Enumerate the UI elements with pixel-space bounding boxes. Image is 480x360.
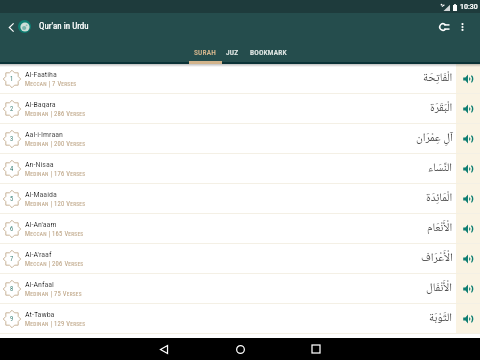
staticText: SURAH — [194, 48, 217, 57]
staticText: BOOKMARK — [250, 48, 287, 57]
button[interactable]: More options — [451, 16, 473, 38]
staticText: 2 — [10, 105, 14, 113]
staticText: 7 — [10, 255, 14, 263]
button[interactable]: JUZ — [226, 40, 239, 64]
button[interactable]: 2 — [0, 94, 480, 123]
staticText: 5 — [10, 195, 14, 203]
button[interactable]: Play audio — [456, 124, 480, 153]
staticText: الْأَنْعَام — [427, 219, 453, 239]
button[interactable]: 4 — [0, 154, 480, 183]
staticText: الْمَائِدَة — [426, 189, 453, 209]
button[interactable]: Play audio — [456, 244, 480, 273]
staticText: MEDINAN | 129 VERSES — [25, 320, 86, 328]
staticText: Aal-i-Imraan — [25, 130, 63, 139]
staticText: Al-A'raaf — [25, 250, 52, 259]
staticText: 8 — [10, 285, 14, 293]
staticText: MECCAN | 206 VERSES — [25, 260, 84, 268]
staticText: الْبَقَرَة — [430, 99, 453, 119]
staticText: JUZ — [226, 48, 239, 57]
button[interactable]: Back — [4, 20, 18, 34]
staticText: الْفَاتِحَة — [423, 69, 453, 89]
staticText: آلِ عِمْرَان — [416, 129, 453, 149]
button[interactable]: Play audio — [456, 304, 480, 333]
button[interactable]: Play audio — [456, 214, 480, 243]
staticText: Al-Faatiha — [25, 70, 57, 79]
button[interactable]: 8 — [0, 274, 480, 303]
staticText: MEDINAN | 120 VERSES — [25, 200, 86, 208]
button[interactable]: Home — [202, 338, 278, 360]
staticText: النِّسَاء — [428, 159, 453, 179]
button[interactable]: 7 — [0, 244, 480, 273]
staticText: 6 — [10, 225, 14, 233]
staticText: At-Tawba — [25, 310, 55, 319]
button[interactable]: Back — [126, 338, 202, 360]
button[interactable]: Play audio — [456, 184, 480, 213]
staticText: MECCAN | 165 VERSES — [25, 230, 84, 238]
button[interactable]: 9 — [0, 304, 480, 333]
staticText: Al-Baqara — [25, 100, 56, 109]
staticText: MECCAN | 7 VERSES — [25, 80, 77, 88]
staticText: 1 — [10, 75, 14, 83]
staticText: 4 — [10, 165, 14, 173]
staticText: MEDINAN | 200 VERSES — [25, 140, 86, 148]
button[interactable]: 6 — [0, 214, 480, 243]
button[interactable]: Play audio — [456, 64, 480, 93]
button[interactable]: 5 — [0, 184, 480, 213]
button[interactable]: 1 — [0, 64, 480, 93]
staticText: MEDINAN | 75 VERSES — [25, 290, 82, 298]
staticText: MEDINAN | 286 VERSES — [25, 110, 86, 118]
staticText: Al-Maaida — [25, 190, 57, 199]
button[interactable]: Play audio — [456, 94, 480, 123]
staticText: الْأَعْرَاف — [421, 249, 453, 269]
staticText: التَّوْبَة — [429, 309, 453, 329]
button[interactable]: Translation — [433, 16, 455, 38]
staticText: MEDINAN | 176 VERSES — [25, 170, 86, 178]
button[interactable]: BOOKMARK — [250, 40, 287, 64]
staticText: الْأَنْفَال — [426, 279, 453, 299]
staticText: An-Nisaa — [25, 160, 54, 169]
staticText: 9 — [10, 315, 14, 323]
button[interactable]: Recents — [278, 338, 354, 360]
button[interactable]: SURAH — [189, 40, 222, 64]
staticText: Al-Anfaal — [25, 280, 54, 289]
staticText: Al-An'aam — [25, 220, 57, 229]
staticText: Qur'an in Urdu — [39, 21, 89, 32]
button[interactable]: Play audio — [456, 154, 480, 183]
button[interactable]: Play audio — [456, 274, 480, 303]
staticText: 10:30 — [460, 3, 478, 11]
button[interactable]: 3 — [0, 124, 480, 153]
staticText: 3 — [10, 135, 14, 143]
